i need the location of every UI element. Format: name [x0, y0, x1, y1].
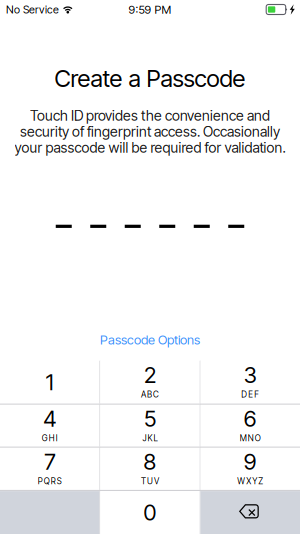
- button[interactable]: 3: [200, 361, 300, 404]
- staticText: 9: [244, 448, 257, 475]
- staticText: 1: [46, 369, 54, 396]
- staticText: 2: [144, 362, 156, 388]
- button[interactable]: 4: [0, 405, 99, 447]
- staticText: Touch ID provides the convenience and: [30, 107, 270, 124]
- staticText: 9:59 PM: [128, 3, 171, 16]
- staticText: 4: [43, 405, 56, 432]
- staticText: D E F: [241, 389, 259, 400]
- staticText: 6: [244, 405, 257, 432]
- staticText: P Q R S: [38, 476, 62, 486]
- button[interactable]: 8: [100, 448, 200, 490]
- staticText: Passcode Options: [100, 332, 200, 347]
- button[interactable]: 2: [100, 361, 200, 404]
- staticText: G H I: [42, 433, 58, 443]
- button[interactable]: Delete: [200, 491, 300, 534]
- staticText: 0: [143, 499, 156, 526]
- staticText: security of fingerprint access. Occasion…: [20, 123, 280, 140]
- staticText: A B C: [141, 389, 159, 400]
- staticText: M N O: [240, 433, 261, 443]
- staticText: 3: [244, 362, 257, 388]
- staticText: your passcode will be required for valid…: [14, 139, 285, 156]
- staticText: 7: [44, 448, 55, 475]
- staticText: J K L: [142, 433, 157, 443]
- staticText: 5: [144, 405, 156, 432]
- staticText: No Service: [6, 3, 59, 16]
- button[interactable]: 6: [200, 405, 300, 447]
- staticText: T U V: [141, 476, 159, 486]
- button[interactable]: 9: [200, 448, 300, 490]
- staticText: Create a Passcode: [54, 64, 245, 93]
- button[interactable]: Passcode Options: [100, 329, 200, 351]
- button[interactable]: 7: [0, 448, 99, 490]
- button[interactable]: 1: [0, 361, 99, 404]
- button[interactable]: 5: [100, 405, 200, 447]
- staticText: 8: [143, 448, 156, 475]
- staticText: W X Y Z: [237, 476, 263, 486]
- button[interactable]: 0: [100, 491, 200, 534]
